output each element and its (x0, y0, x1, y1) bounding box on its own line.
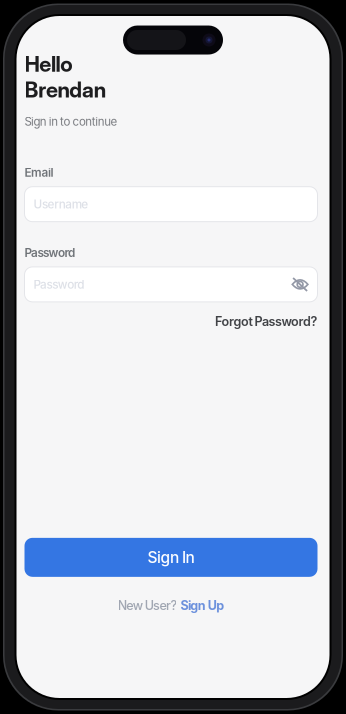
staticText: Brendan (24, 77, 106, 103)
button[interactable]: Show password (291, 277, 308, 291)
staticText: Sign In (147, 548, 194, 567)
button[interactable]: Sign In (24, 538, 317, 577)
staticText: Sign in to continue (24, 115, 118, 128)
button[interactable]: New User? (118, 598, 224, 613)
staticText: Password (33, 277, 84, 291)
staticText: Email (24, 165, 53, 180)
staticText: New User? (118, 598, 177, 613)
button[interactable]: Forgot Password? (215, 314, 317, 329)
staticText: Username (33, 197, 88, 211)
staticText: Password (24, 246, 75, 260)
staticText: Hello (24, 51, 72, 77)
staticText: Sign Up (180, 598, 224, 613)
staticText: Forgot Password? (215, 314, 317, 329)
